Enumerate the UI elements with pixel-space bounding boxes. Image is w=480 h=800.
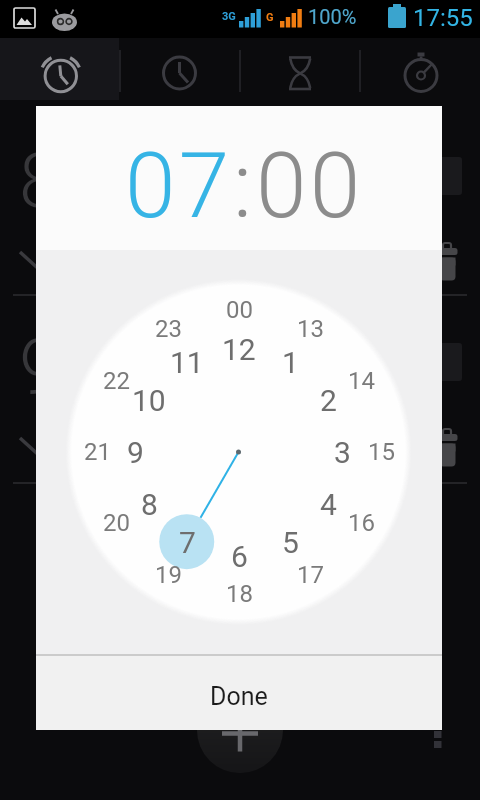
staticText: 07 [125,133,233,240]
staticText: 00 [256,133,364,240]
staticText: 18 [226,580,253,608]
staticText: 00 [226,296,253,324]
button[interactable] [414,712,480,800]
button[interactable] [120,33,240,100]
staticText: 14 [348,367,375,395]
staticText: 19 [155,561,182,589]
staticText: 13 [297,315,324,343]
button[interactable]: 22 [86,361,146,401]
staticText: 15 [368,438,395,466]
button[interactable] [197,687,283,773]
staticText: 9 [19,322,62,411]
staticText: 4 [320,487,337,522]
button[interactable]: 10 [119,380,179,420]
button[interactable]: 07 [125,133,233,240]
button[interactable]: 7 [157,522,217,562]
staticText: 17 [297,561,324,589]
staticText: 9 [127,435,144,470]
staticText: G [266,11,274,24]
staticText: 100% [308,5,357,28]
button[interactable]: 20 [86,503,146,543]
staticText: 5 [282,525,299,560]
button[interactable]: Done [36,656,442,730]
staticText: 3 [334,435,351,470]
button[interactable]: 19 [138,555,198,595]
button[interactable]: 11 [157,342,217,382]
button[interactable]: 5 [260,522,320,562]
button[interactable]: 14 [331,361,391,401]
button[interactable]: 23 [138,309,198,349]
button[interactable]: 15 [351,432,411,472]
button[interactable]: 18 [209,574,269,614]
button[interactable]: 1 [260,342,320,382]
staticText: 21 [84,438,111,466]
staticText: : [233,133,256,240]
button[interactable]: 3 [312,432,372,472]
staticText: 3G [222,10,236,23]
button[interactable]: 9 [105,432,165,472]
button[interactable]: 12 [209,329,269,369]
staticText: 10 [132,383,166,418]
staticText: 16 [348,509,375,537]
staticText: 6 [231,539,248,574]
button[interactable]: 2 [298,380,358,420]
button[interactable]: 13 [280,309,340,349]
button[interactable]: 00 [256,133,364,240]
staticText: 7 [179,525,196,560]
staticText: 8 [19,136,62,225]
staticText: 23 [155,315,182,343]
staticText: 8 [141,487,158,522]
button[interactable]: 00 [209,290,269,330]
staticText: 12 [222,332,256,367]
button[interactable] [0,33,120,100]
button[interactable]: 8 [119,484,179,524]
button[interactable]: 6 [209,536,269,576]
button[interactable]: 4 [298,484,358,524]
staticText: 22 [103,367,130,395]
button[interactable]: 16 [331,503,391,543]
staticText: 17:55 [413,4,473,32]
button[interactable]: 21 [67,432,127,472]
staticText: 1 [282,345,299,380]
staticText: Done [210,682,268,711]
staticText: 11 [170,345,204,380]
button[interactable]: 17 [280,555,340,595]
staticText: 2 [320,383,337,418]
staticText: 20 [103,509,130,537]
button[interactable] [360,33,480,100]
button[interactable] [240,33,360,100]
